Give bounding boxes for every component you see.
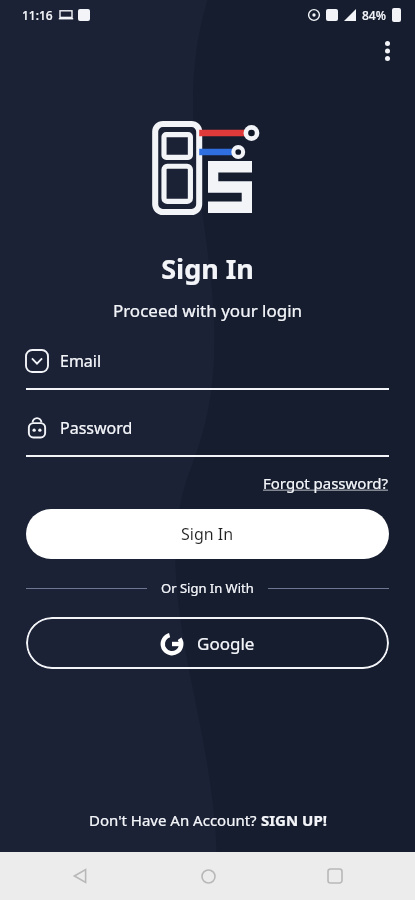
staticText: Sign In [0,250,415,287]
staticText: Don't Have An Account? [89,810,261,830]
button[interactable]: Password [26,417,389,457]
button[interactable]: Back [60,856,100,896]
staticText: Google [197,632,255,655]
staticText: 84% [362,7,386,23]
staticText: Email [60,350,102,372]
staticText: Proceed with your login [0,299,415,322]
button[interactable]: Sign In [26,509,389,559]
button[interactable]: More options [367,31,407,71]
staticText: 11:16 [22,7,53,23]
button[interactable]: Email [26,350,389,390]
button[interactable]: Recents [315,856,355,896]
staticText: Or Sign In With [161,579,254,597]
button[interactable]: SIGN UP! [261,810,327,830]
button[interactable]: Google [26,617,389,669]
staticText: Password [60,417,133,439]
button[interactable]: Forgot password? [263,473,389,493]
staticText: Sign In [181,523,234,545]
button[interactable]: Home [188,856,228,896]
